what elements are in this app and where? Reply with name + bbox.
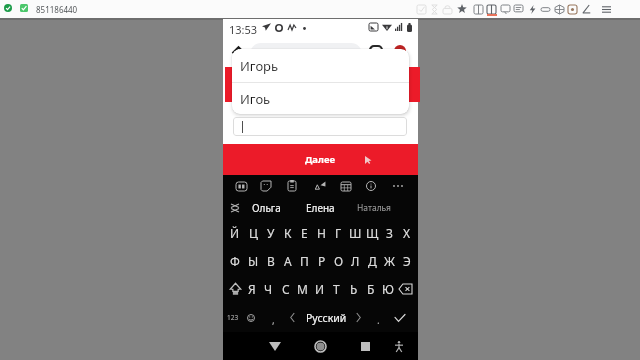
button[interactable]: Ц	[244, 219, 262, 247]
button[interactable]: Backspace	[396, 275, 415, 303]
button[interactable]: Х	[398, 219, 415, 247]
staticText: Й	[230, 225, 240, 241]
button[interactable]: more	[389, 175, 407, 197]
button[interactable]: Toolbar button	[428, 0, 441, 18]
button[interactable]: clipboard	[283, 175, 301, 197]
button[interactable]	[233, 117, 407, 136]
button[interactable]: Е	[296, 219, 313, 247]
button[interactable]: 123	[225, 303, 241, 332]
button[interactable]: Shift	[226, 275, 244, 303]
button[interactable]: Ь	[345, 275, 362, 303]
button[interactable]: Э	[398, 247, 415, 275]
button[interactable]: Ы	[244, 247, 262, 275]
button[interactable]	[250, 43, 362, 65]
staticText: Х	[403, 225, 411, 241]
button[interactable]: Й	[226, 219, 244, 247]
button[interactable]: Ф	[226, 247, 244, 275]
button[interactable]: Ж	[381, 247, 398, 275]
button[interactable]: Toolbar button	[512, 0, 525, 18]
button[interactable]: Toolbar button	[600, 0, 613, 18]
button[interactable]: Toolbar button	[485, 0, 498, 18]
staticText: Игоь	[240, 90, 271, 108]
button[interactable]: И	[311, 275, 328, 303]
button[interactable]: Л	[347, 247, 364, 275]
staticText: 13:53	[229, 22, 258, 37]
button[interactable]: А	[279, 247, 296, 275]
button[interactable]: Toolbar button	[415, 0, 428, 18]
button[interactable]: Наталья	[351, 197, 396, 219]
button[interactable]: Emoji	[243, 303, 259, 332]
button[interactable]: sticker	[257, 175, 275, 197]
staticText: 851186440	[36, 4, 78, 15]
button[interactable]: Я	[244, 275, 260, 303]
button[interactable]: Toolbar button	[553, 0, 566, 18]
button[interactable]: Ю	[379, 275, 396, 303]
button[interactable]: Accessibility	[389, 332, 409, 360]
button[interactable]: Ш	[347, 219, 364, 247]
button[interactable]: М	[294, 275, 311, 303]
button[interactable]: Ольга	[248, 197, 284, 219]
button[interactable]: ,	[266, 303, 280, 332]
button[interactable]: Next language	[351, 303, 365, 332]
staticText: З	[386, 225, 393, 241]
staticText: Ольга	[252, 201, 281, 215]
button[interactable]: Н	[313, 219, 330, 247]
staticText: И	[315, 281, 325, 297]
button[interactable]: Scan QR code	[368, 45, 384, 61]
button[interactable]: Profile	[394, 45, 406, 57]
staticText: У	[267, 225, 275, 241]
button[interactable]: .	[371, 303, 385, 332]
button[interactable]: Home	[308, 332, 332, 360]
button[interactable]: Щ	[364, 219, 381, 247]
button[interactable]: info	[362, 175, 380, 197]
button[interactable]: Т	[328, 275, 345, 303]
button[interactable]: Toolbar button	[526, 0, 539, 18]
staticText: Я	[248, 281, 256, 297]
button[interactable]: grid	[337, 175, 355, 197]
staticText: Л	[351, 253, 360, 269]
staticText: 123	[227, 313, 239, 322]
button[interactable]: З	[381, 219, 398, 247]
button[interactable]: Previous language	[285, 303, 299, 332]
staticText: ,	[272, 313, 275, 327]
staticText: Далее	[305, 153, 336, 166]
button[interactable]: Русский	[301, 303, 351, 332]
button[interactable]: Recents	[353, 332, 377, 360]
staticText: Ы	[248, 253, 259, 269]
staticText: Поиск людей	[260, 45, 331, 60]
button[interactable]: Далее	[223, 144, 418, 175]
button[interactable]: С	[277, 275, 294, 303]
button[interactable]: Р	[313, 247, 330, 275]
button[interactable]: Toolbar button	[539, 0, 552, 18]
button[interactable]: К	[279, 219, 296, 247]
button[interactable]: В	[262, 247, 279, 275]
button[interactable]: Игоь	[232, 83, 409, 114]
staticText: Ж	[384, 253, 395, 269]
button[interactable]: Enter	[391, 303, 409, 332]
button[interactable]: Toolbar button	[499, 0, 512, 18]
staticText: Б	[367, 281, 375, 297]
button[interactable]: О	[330, 247, 347, 275]
button[interactable]: Ч	[260, 275, 277, 303]
button[interactable]: Toolbar button	[455, 0, 468, 18]
staticText: .	[377, 313, 380, 327]
staticText: Н	[317, 225, 326, 241]
staticText: Елена	[306, 201, 335, 215]
staticText: Игорь	[240, 57, 279, 75]
button[interactable]: Елена	[302, 197, 338, 219]
button[interactable]: Back	[229, 44, 247, 62]
button[interactable]: Игорь	[232, 49, 409, 82]
button[interactable]: gif	[232, 175, 250, 197]
button[interactable]: Б	[362, 275, 379, 303]
button[interactable]: Toolbar button	[441, 0, 454, 18]
button[interactable]: Г	[330, 219, 347, 247]
button[interactable]: translate	[311, 175, 329, 197]
button[interactable]: Back	[263, 332, 287, 360]
button[interactable]: Toolbar button	[566, 0, 579, 18]
staticText: К	[284, 225, 292, 241]
button[interactable]: Toolbar button	[580, 0, 593, 18]
button[interactable]: П	[296, 247, 313, 275]
button[interactable]: Toolbar button	[472, 0, 485, 18]
button[interactable]: У	[262, 219, 279, 247]
button[interactable]: Д	[364, 247, 381, 275]
